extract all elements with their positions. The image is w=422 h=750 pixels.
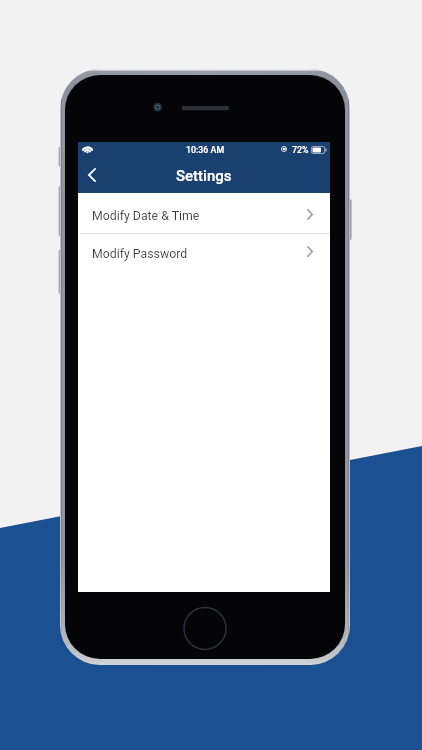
button[interactable]: Modify Date & Time xyxy=(78,193,330,233)
button[interactable]: Modify Password xyxy=(78,234,330,273)
staticText: Modify Date & Time xyxy=(92,209,200,223)
button[interactable]: Back xyxy=(77,159,107,190)
staticText: Settings xyxy=(176,167,232,185)
staticText: 72% xyxy=(292,145,309,155)
staticText: 10:36 AM xyxy=(186,145,225,155)
staticText: Modify Password xyxy=(92,247,188,261)
